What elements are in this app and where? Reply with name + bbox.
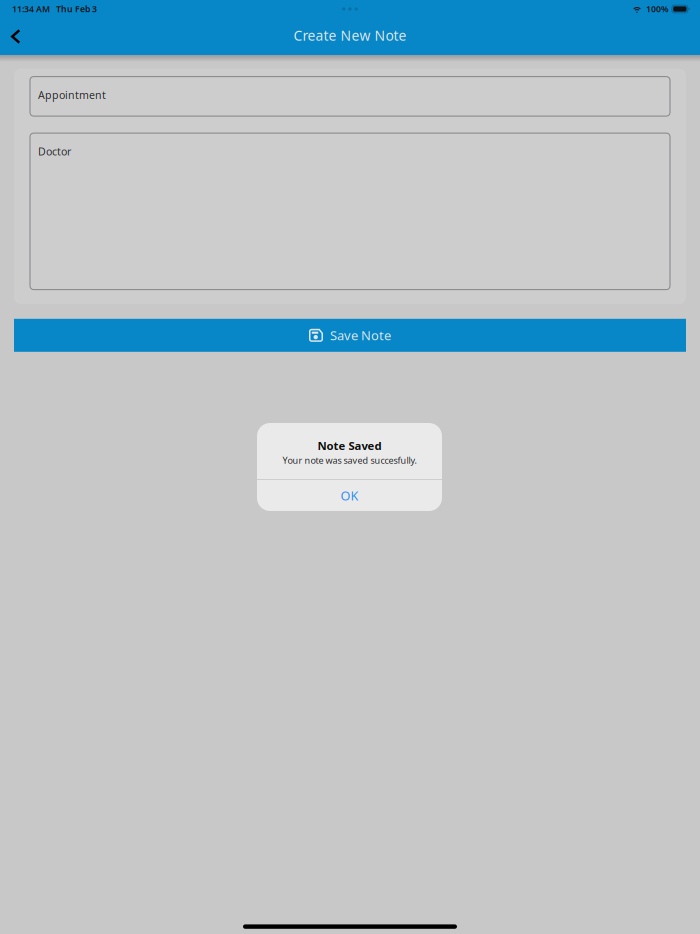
staticText: Thu Feb 3 xyxy=(56,3,97,15)
button[interactable]: Save Note xyxy=(14,319,686,352)
staticText: 100% xyxy=(646,3,669,15)
staticText: Create New Note xyxy=(293,26,406,45)
staticText: Your note was saved succesfully. xyxy=(282,454,416,466)
staticText: OK xyxy=(340,487,358,504)
staticText: Appointment xyxy=(38,88,106,102)
staticText: Note Saved xyxy=(317,438,381,453)
staticText: Save Note xyxy=(330,326,391,344)
button[interactable]: Back xyxy=(0,18,34,55)
staticText: 11:34 AM xyxy=(12,3,50,15)
staticText: Doctor xyxy=(38,144,71,158)
button[interactable]: OK xyxy=(257,480,442,511)
